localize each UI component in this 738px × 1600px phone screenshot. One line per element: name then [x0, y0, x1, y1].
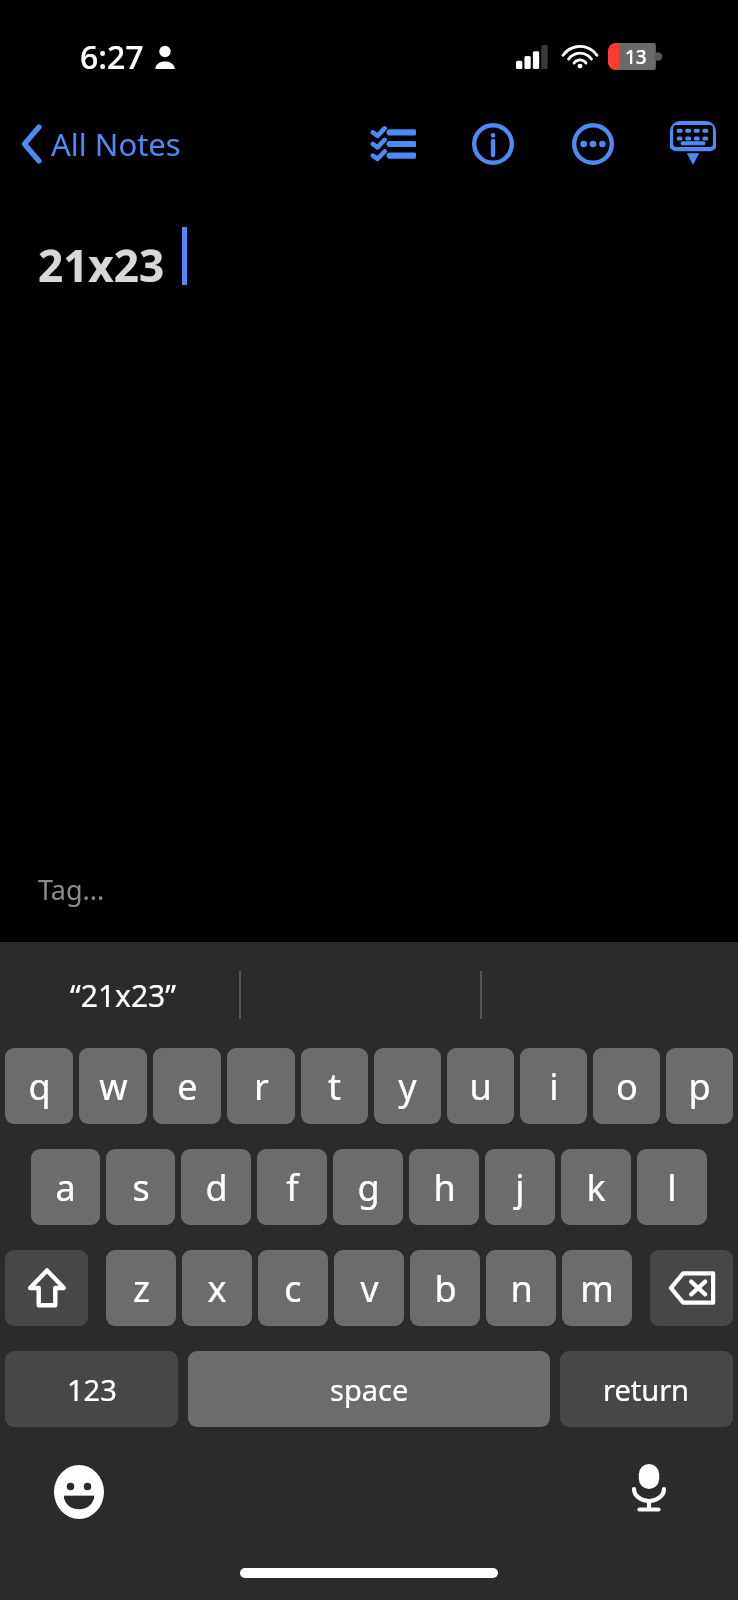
button[interactable]: Backspace [650, 1250, 733, 1326]
button[interactable]: space [188, 1351, 550, 1427]
staticText: c [284, 1264, 302, 1313]
staticText: g [357, 1163, 380, 1212]
button[interactable]: q [5, 1048, 73, 1124]
staticText: a [55, 1163, 76, 1212]
staticText: l [667, 1163, 677, 1212]
button[interactable]: c [258, 1250, 328, 1326]
button[interactable]: a [31, 1149, 100, 1225]
staticText: q [28, 1062, 51, 1111]
button[interactable]: f [257, 1149, 327, 1225]
button[interactable]: d [181, 1149, 251, 1225]
staticText: 6:27 [80, 35, 144, 79]
staticText: y [398, 1062, 417, 1111]
button[interactable]: r [227, 1048, 295, 1124]
staticText: b [434, 1264, 457, 1313]
button[interactable]: w [79, 1048, 147, 1124]
button[interactable]: Shift [5, 1250, 88, 1326]
button[interactable]: x [182, 1250, 252, 1326]
button[interactable]: h [409, 1149, 479, 1225]
button[interactable]: t [301, 1048, 368, 1124]
button[interactable]: y [374, 1048, 441, 1124]
staticText: space [330, 1370, 409, 1409]
button[interactable]: All Notes [18, 117, 185, 171]
staticText: v [360, 1264, 379, 1313]
staticText: 21x23 [38, 235, 165, 295]
staticText: j [515, 1163, 525, 1212]
staticText: k [586, 1163, 606, 1212]
staticText: d [205, 1163, 228, 1212]
staticText: w [99, 1062, 128, 1111]
button[interactable]: Hide keyboard [670, 121, 716, 167]
staticText: 13 [625, 44, 647, 70]
staticText: f [286, 1163, 299, 1212]
button[interactable]: More [570, 121, 616, 167]
staticText: i [549, 1062, 559, 1111]
staticText: 123 [67, 1370, 117, 1409]
button[interactable]: e [153, 1048, 221, 1124]
staticText: u [469, 1062, 492, 1111]
staticText: p [688, 1062, 711, 1111]
button[interactable]: l [637, 1149, 707, 1225]
staticText: m [580, 1264, 614, 1313]
staticText: t [328, 1062, 341, 1111]
staticText: r [254, 1062, 269, 1111]
button[interactable]: Dictation [622, 1461, 676, 1515]
staticText: All Notes [51, 123, 181, 165]
staticText: o [616, 1062, 638, 1111]
staticText: return [603, 1370, 690, 1409]
staticText: h [433, 1163, 456, 1212]
button[interactable]: p [666, 1048, 733, 1124]
button[interactable]: j [485, 1149, 555, 1225]
button[interactable]: n [486, 1250, 556, 1326]
staticText: Tag... [38, 871, 105, 908]
button[interactable]: m [562, 1250, 632, 1326]
button[interactable]: 123 [5, 1351, 178, 1427]
button[interactable]: Emoji [52, 1465, 106, 1519]
staticText: s [132, 1163, 150, 1212]
button[interactable]: Checklist [370, 121, 416, 167]
button[interactable]: k [561, 1149, 631, 1225]
button[interactable]: i [520, 1048, 587, 1124]
button[interactable]: “21x23” [62, 967, 185, 1024]
button[interactable]: u [447, 1048, 514, 1124]
staticText: z [133, 1264, 150, 1313]
button[interactable]: z [106, 1250, 176, 1326]
staticText: n [510, 1264, 533, 1313]
button[interactable]: g [333, 1149, 403, 1225]
button[interactable]: v [334, 1250, 404, 1326]
button[interactable]: return [560, 1351, 733, 1427]
button[interactable]: o [593, 1048, 660, 1124]
button[interactable]: s [106, 1149, 175, 1225]
button[interactable]: Info [470, 121, 516, 167]
staticText: x [207, 1264, 227, 1313]
staticText: e [177, 1062, 198, 1111]
button[interactable]: b [410, 1250, 480, 1326]
